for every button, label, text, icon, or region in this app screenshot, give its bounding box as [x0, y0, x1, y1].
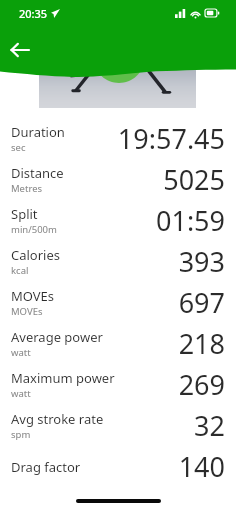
- staticText: 19:57.45: [117, 120, 225, 157]
- staticText: 269: [178, 366, 225, 403]
- staticText: min/500m: [11, 223, 57, 236]
- staticText: 5025: [163, 161, 225, 198]
- staticText: 140: [178, 448, 225, 485]
- button[interactable]: Average power: [0, 323, 236, 364]
- staticText: Split: [11, 205, 38, 223]
- staticText: kcal: [11, 264, 29, 277]
- staticText: Drag factor: [11, 458, 81, 476]
- button[interactable]: Back: [4, 34, 36, 66]
- staticText: Maximum power: [11, 369, 115, 387]
- staticText: Distance: [11, 164, 64, 182]
- staticText: Average power: [11, 328, 103, 346]
- staticText: 697: [178, 284, 225, 321]
- staticText: 20:35: [19, 6, 48, 21]
- button[interactable]: Duration: [0, 118, 236, 159]
- staticText: watt: [11, 346, 31, 359]
- staticText: Avg stroke rate: [11, 410, 104, 428]
- button[interactable]: Maximum power: [0, 364, 236, 405]
- staticText: sec: [11, 141, 26, 154]
- staticText: Calories: [11, 246, 61, 264]
- button[interactable]: Calories: [0, 241, 236, 282]
- button[interactable]: Split: [0, 200, 236, 241]
- staticText: watt: [11, 387, 31, 400]
- staticText: 218: [178, 325, 225, 362]
- staticText: spm: [11, 428, 31, 441]
- staticText: MOVEs: [11, 305, 43, 318]
- button[interactable]: Distance: [0, 159, 236, 200]
- staticText: 393: [178, 243, 225, 280]
- staticText: 01:59: [155, 202, 225, 239]
- staticText: 32: [194, 407, 225, 444]
- button[interactable]: Drag factor: [0, 446, 236, 487]
- button[interactable]: Avg stroke rate: [0, 405, 236, 446]
- staticText: Metres: [11, 182, 43, 195]
- staticText: MOVEs: [11, 287, 55, 305]
- button[interactable]: MOVEs: [0, 282, 236, 323]
- staticText: Duration: [11, 123, 65, 141]
